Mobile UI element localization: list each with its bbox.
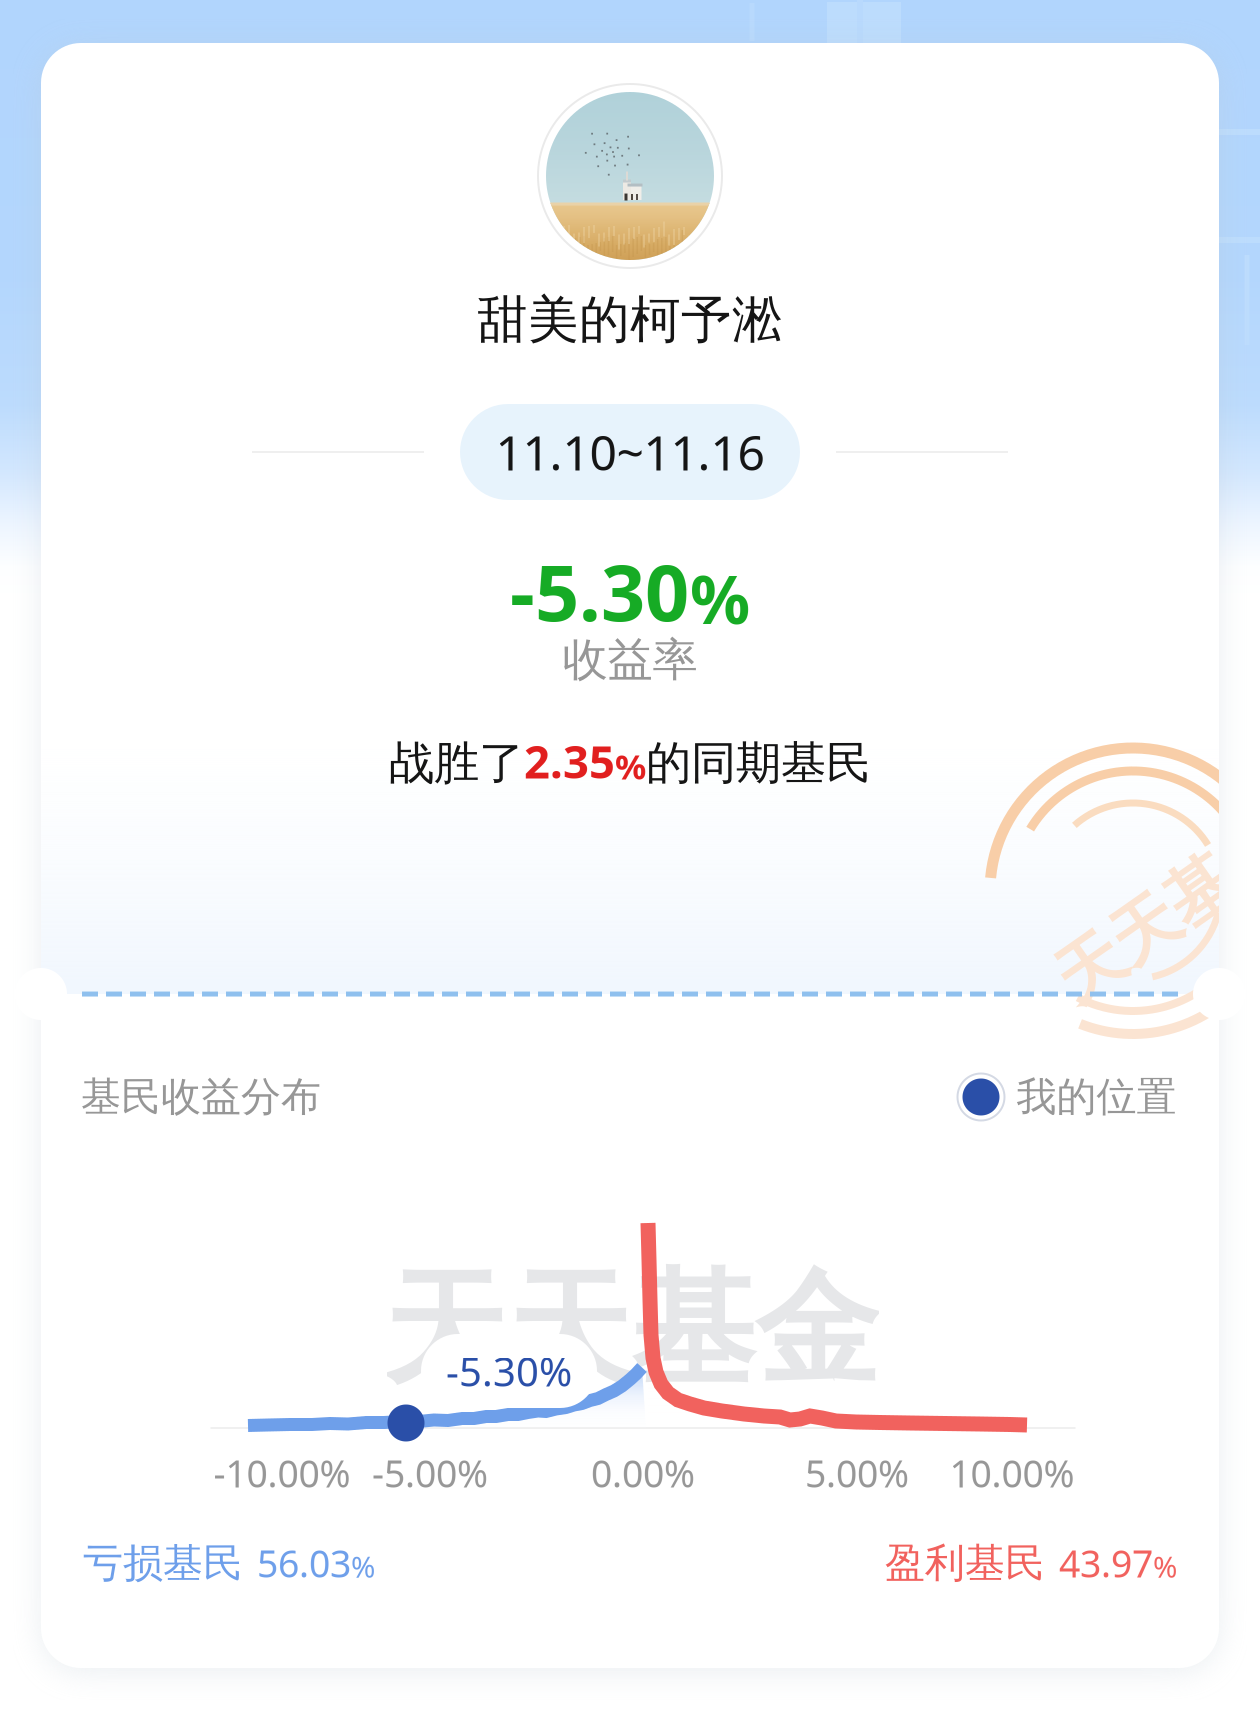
staticText: 的同期基民 — [646, 735, 871, 791]
staticText: 5.00% — [805, 1448, 909, 1498]
staticText: 2.35 — [524, 731, 615, 791]
staticText: 11.10~11.16 — [495, 420, 764, 484]
staticText: 43.97 — [1059, 1538, 1153, 1588]
staticText: 0.00% — [591, 1448, 695, 1498]
staticText: 盈利基民 — [885, 1539, 1045, 1588]
staticText: % — [690, 554, 750, 642]
staticText: % — [1153, 1547, 1177, 1586]
staticText: 56.03 — [257, 1538, 351, 1588]
staticText: -5.00% — [372, 1448, 488, 1498]
staticText: 天天基金 — [383, 1254, 879, 1406]
staticText: 亏损基民 — [83, 1539, 243, 1588]
staticText: % — [615, 743, 646, 789]
staticText: -10.00% — [213, 1448, 350, 1498]
staticText: 收益率 — [562, 632, 697, 688]
staticText: -5.30% — [446, 1344, 572, 1397]
staticText: 甜美的柯予淞 — [477, 289, 783, 351]
staticText: % — [351, 1547, 375, 1586]
staticText: 基民收益分布 — [81, 1072, 321, 1121]
staticText: -5.30 — [510, 540, 689, 642]
staticText: 战胜了 — [389, 735, 524, 791]
staticText: 天天基金 — [1038, 869, 1260, 951]
staticText: 我的位置 — [1016, 1072, 1176, 1121]
staticText: 10.00% — [949, 1448, 1074, 1498]
